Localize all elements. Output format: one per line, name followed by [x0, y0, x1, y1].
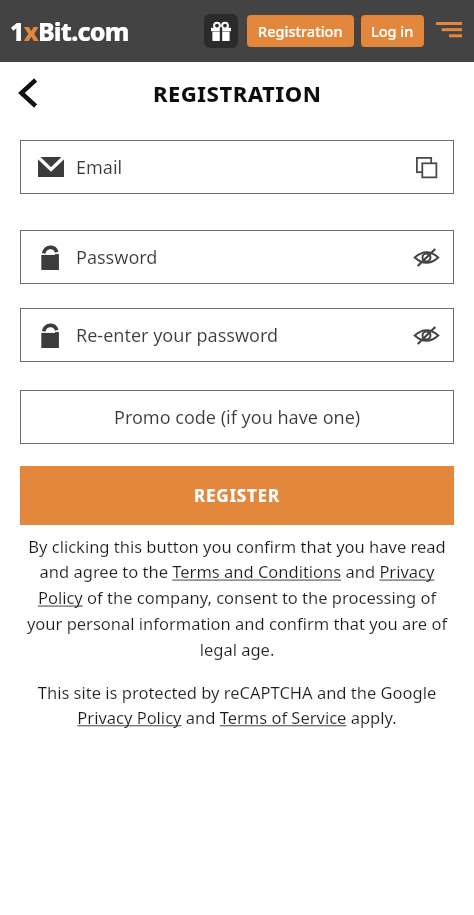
- button[interactable]: Re-enter your password: [20, 308, 454, 362]
- staticText: Promo code (if you have one): [114, 405, 361, 430]
- button[interactable]: Show repeated password: [408, 317, 444, 353]
- button[interactable]: Promotions: [204, 14, 238, 48]
- staticText: REGISTER: [194, 484, 280, 507]
- button[interactable]: Email: [20, 140, 454, 194]
- staticText: Re-enter your password: [76, 323, 408, 348]
- staticText: 1xBit.com: [10, 14, 129, 48]
- staticText: Email: [76, 155, 408, 180]
- staticText: Password: [76, 245, 408, 270]
- button[interactable]: Paste email: [408, 149, 444, 185]
- button[interactable]: REGISTER: [20, 466, 454, 525]
- button[interactable]: By clicking this button you confirm that…: [20, 535, 454, 661]
- button[interactable]: Registration: [247, 15, 354, 47]
- button[interactable]: This site is protected by reCAPTCHA and …: [20, 681, 454, 729]
- staticText: Log in: [371, 21, 414, 41]
- button[interactable]: Menu: [432, 14, 466, 48]
- button[interactable]: Back: [6, 71, 50, 115]
- staticText: REGISTRATION: [153, 78, 322, 108]
- staticText: Registration: [258, 21, 343, 41]
- button[interactable]: Password: [20, 230, 454, 284]
- button[interactable]: 1xBit.com: [10, 14, 129, 48]
- button[interactable]: Log in: [361, 15, 424, 47]
- button[interactable]: Promo code (if you have one): [20, 390, 454, 444]
- button[interactable]: Show password: [408, 239, 444, 275]
